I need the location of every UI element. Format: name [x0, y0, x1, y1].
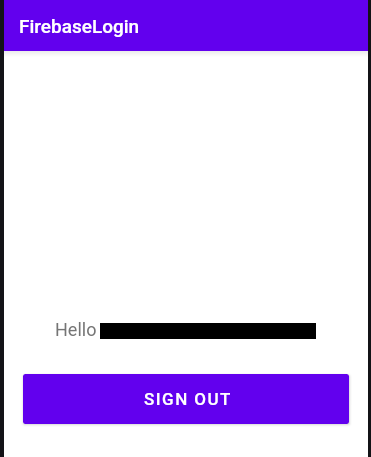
staticText: FirebaseLogin — [19, 15, 140, 37]
staticText: SIGN OUT — [144, 389, 232, 409]
staticText: Hello — [55, 319, 101, 340]
button[interactable]: SIGN OUT — [23, 374, 349, 424]
